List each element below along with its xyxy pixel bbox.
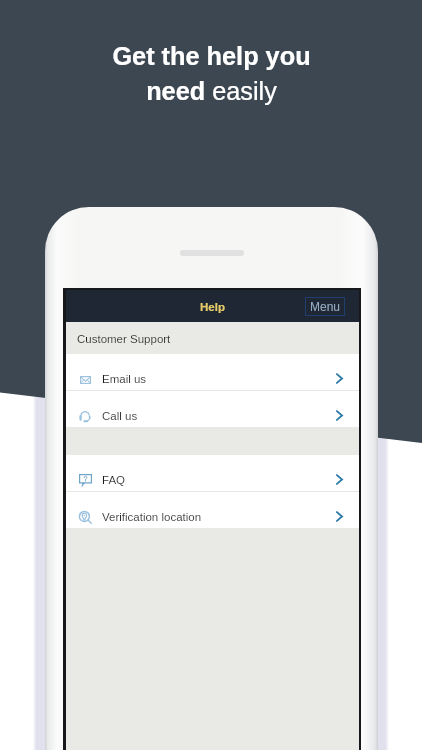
staticText: Verification location (102, 511, 202, 524)
button[interactable]: Verification location (66, 492, 359, 528)
staticText: FAQ (102, 474, 126, 487)
staticText: Menu (310, 300, 341, 313)
staticText: Customer Support (77, 333, 171, 346)
staticText: Call us (102, 410, 138, 423)
staticText: need easily (146, 77, 277, 105)
staticText: Get the help you (112, 42, 311, 70)
button[interactable]: Menu (305, 297, 345, 316)
staticText: Email us (102, 373, 147, 386)
staticText: Help (200, 301, 225, 314)
button[interactable]: Email us (66, 354, 359, 390)
button[interactable]: FAQ (66, 455, 359, 491)
button[interactable]: Call us (66, 391, 359, 427)
